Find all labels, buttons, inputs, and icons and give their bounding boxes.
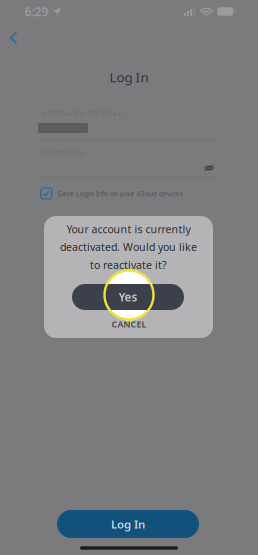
staticText: Log In [111, 516, 145, 532]
button[interactable]: Show password [198, 159, 220, 177]
staticText: PASSWORD [41, 148, 84, 158]
staticText: USERNAME OR EMAIL [42, 108, 125, 118]
staticText: Log In [109, 68, 148, 86]
button[interactable]: CANCEL [108, 315, 149, 333]
button[interactable]: Yes [72, 284, 184, 310]
staticText: 6:29 [24, 3, 48, 20]
button[interactable]: Log In [57, 510, 199, 538]
staticText: CANCEL [111, 318, 146, 330]
button[interactable]: Save Login Info on your iCloud devices [40, 184, 183, 202]
staticText: to reactivate it? [90, 258, 167, 272]
staticText: deactivated. Would you like [60, 240, 197, 254]
staticText: Save Login Info on your iCloud devices [58, 189, 183, 198]
staticText: Yes [118, 289, 137, 305]
staticText: Your account is currently [66, 222, 190, 236]
button[interactable]: Back [0, 23, 31, 53]
